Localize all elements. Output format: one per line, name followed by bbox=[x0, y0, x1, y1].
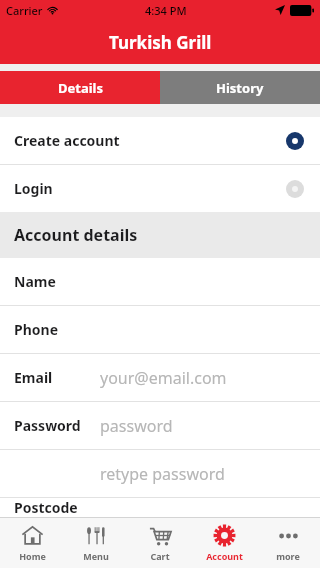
staticText: Name bbox=[14, 272, 56, 291]
button[interactable]: Home bbox=[0, 518, 64, 568]
staticText: Account details bbox=[14, 224, 138, 246]
staticText: Login bbox=[14, 179, 53, 198]
button[interactable]: Phone bbox=[0, 306, 320, 353]
staticText: retype password bbox=[100, 463, 225, 485]
staticText: Account bbox=[206, 550, 243, 562]
button[interactable]: History bbox=[160, 71, 320, 104]
button[interactable]: Create account bbox=[0, 117, 320, 164]
staticText: Postcode bbox=[14, 498, 78, 517]
staticText: Menu bbox=[83, 550, 109, 562]
staticText: 4:34 PM bbox=[145, 3, 187, 18]
staticText: Home bbox=[19, 550, 46, 562]
staticText: Cart bbox=[150, 550, 170, 562]
button[interactable]: more bbox=[256, 518, 320, 568]
button[interactable]: Details bbox=[0, 71, 160, 104]
staticText: Password bbox=[14, 416, 81, 435]
staticText: Email bbox=[14, 368, 53, 387]
staticText: your@email.com bbox=[100, 367, 227, 389]
staticText: History bbox=[216, 79, 264, 97]
staticText: Details bbox=[58, 79, 103, 97]
button[interactable]: Account bbox=[192, 518, 256, 568]
staticText: more bbox=[276, 550, 300, 562]
staticText: Carrier bbox=[6, 3, 43, 18]
button[interactable]: retype password bbox=[0, 450, 320, 497]
button[interactable]: Password bbox=[0, 402, 320, 449]
staticText: Turkish Grill bbox=[109, 31, 212, 54]
staticText: password bbox=[100, 415, 173, 437]
button[interactable]: Login bbox=[0, 165, 320, 212]
button[interactable]: Cart bbox=[128, 518, 192, 568]
staticText: Phone bbox=[14, 320, 59, 339]
button[interactable]: Postcode bbox=[0, 498, 320, 517]
staticText: Create account bbox=[14, 131, 120, 150]
button[interactable]: Email bbox=[0, 354, 320, 401]
button[interactable]: Name bbox=[0, 258, 320, 305]
button[interactable]: Menu bbox=[64, 518, 128, 568]
